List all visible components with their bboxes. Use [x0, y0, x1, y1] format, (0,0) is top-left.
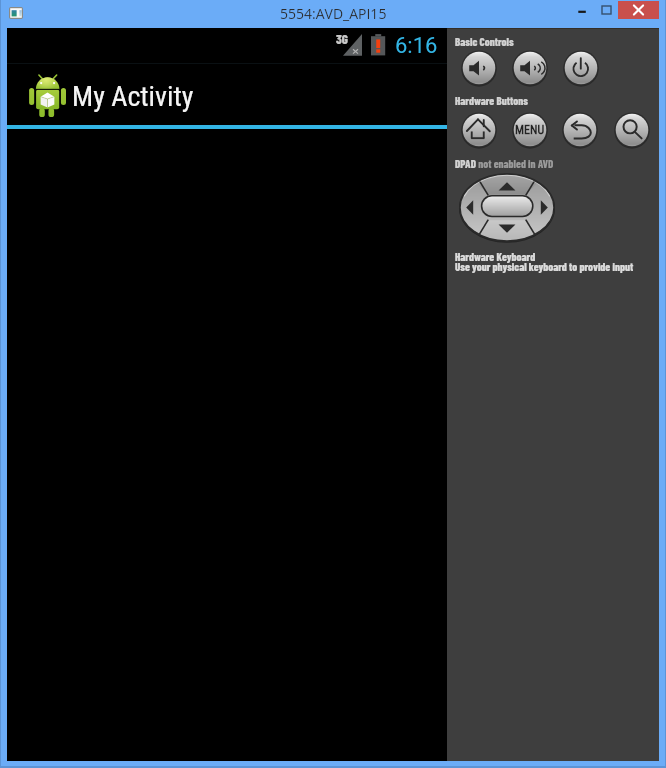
button[interactable]: Menu: [512, 112, 548, 148]
staticText: 3G: [336, 31, 348, 47]
staticText: 5554:AVD_API15: [280, 4, 387, 23]
button[interactable]: Volume down: [461, 50, 497, 86]
button[interactable]: Minimise: [565, 1, 606, 19]
staticText: Hardware Buttons: [455, 94, 528, 107]
staticText: My Activity: [72, 80, 194, 113]
staticText: Hardware Keyboard: [455, 250, 536, 263]
button[interactable]: Back: [562, 112, 598, 148]
staticText: MENU: [515, 123, 545, 137]
button[interactable]: Search: [614, 112, 650, 148]
staticText: 6:16: [395, 33, 438, 59]
button[interactable]: Volume up: [512, 50, 548, 86]
button[interactable]: Home: [461, 112, 497, 148]
button[interactable]: D-pad: [459, 173, 555, 242]
button[interactable]: Close: [618, 1, 659, 19]
staticText: Use your physical keyboard to provide in…: [455, 260, 634, 273]
staticText: Basic Controls: [455, 35, 514, 48]
button[interactable]: Maximise: [589, 1, 630, 19]
staticText: not enabled in AVD: [476, 157, 554, 170]
button[interactable]: Power: [563, 50, 599, 86]
staticText: DPAD: [455, 157, 476, 170]
